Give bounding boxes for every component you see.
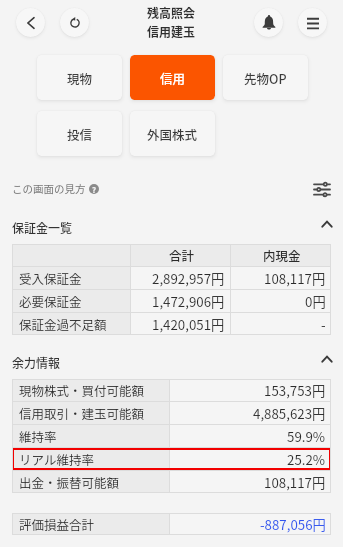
button[interactable]: Back xyxy=(16,8,45,37)
button[interactable]: 保証金一覧 xyxy=(0,216,343,238)
button[interactable]: 現物 xyxy=(37,55,122,100)
staticText: 合計 xyxy=(169,246,195,264)
staticText: - xyxy=(321,315,326,334)
staticText: 1,420,051円 xyxy=(152,315,225,334)
button[interactable]: この画面の見方 xyxy=(12,181,99,196)
staticText: 信用取引・建玉可能額 xyxy=(19,404,145,422)
button[interactable]: 先物OP xyxy=(223,55,308,100)
staticText: 内現金 xyxy=(263,246,301,264)
button[interactable]: Notifications xyxy=(254,8,283,37)
staticText: 評価損益合計 xyxy=(19,515,95,533)
staticText: ? xyxy=(92,184,97,194)
staticText: 4,885,623円 xyxy=(253,404,326,423)
staticText: 108,117円 xyxy=(264,473,326,492)
staticText: 保証金過不足額 xyxy=(19,315,107,333)
staticText: 信用建玉 xyxy=(147,23,196,40)
staticText: 153,753円 xyxy=(264,381,326,400)
staticText: 信用 xyxy=(160,69,186,87)
staticText: 必要保証金 xyxy=(19,292,82,310)
staticText: 投信 xyxy=(67,125,93,143)
button[interactable]: Display settings xyxy=(313,180,331,198)
staticText: 残高照会 xyxy=(147,4,196,21)
button[interactable]: 信用取引・建玉可能額 xyxy=(12,402,331,424)
button[interactable]: 外国株式 xyxy=(130,111,215,156)
button[interactable]: Refresh xyxy=(60,8,89,37)
staticText: 59.9% xyxy=(287,427,326,446)
staticText: 維持率 xyxy=(19,427,57,445)
button[interactable]: 維持率 xyxy=(12,425,331,447)
staticText: 1,472,906円 xyxy=(152,292,225,311)
staticText: 先物OP xyxy=(244,69,287,87)
staticText: この画面の見方 xyxy=(12,181,86,196)
button[interactable]: 投信 xyxy=(37,111,122,156)
button[interactable]: 出金・振替可能額 xyxy=(12,471,331,493)
staticText: 0円 xyxy=(305,292,326,311)
staticText: リアル維持率 xyxy=(19,450,94,468)
staticText: 25.2% xyxy=(287,450,326,469)
button[interactable]: 信用 xyxy=(130,55,215,100)
staticText: 108,117円 xyxy=(264,269,326,288)
staticText: 出金・振替可能額 xyxy=(19,473,120,491)
staticText: -887,056円 xyxy=(260,515,326,534)
staticText: 現物株式・買付可能額 xyxy=(19,381,145,399)
button[interactable]: 現物株式・買付可能額 xyxy=(12,379,331,401)
staticText: 外国株式 xyxy=(147,125,198,143)
staticText: 現物 xyxy=(67,69,93,87)
staticText: 受入保証金 xyxy=(19,269,82,287)
button[interactable]: 余力情報 xyxy=(0,351,343,373)
button[interactable]: リアル維持率 xyxy=(12,448,331,470)
staticText: 保証金一覧 xyxy=(12,219,73,236)
staticText: 2,892,957円 xyxy=(152,269,225,288)
staticText: 余力情報 xyxy=(12,354,61,371)
button[interactable]: Menu xyxy=(298,8,327,37)
